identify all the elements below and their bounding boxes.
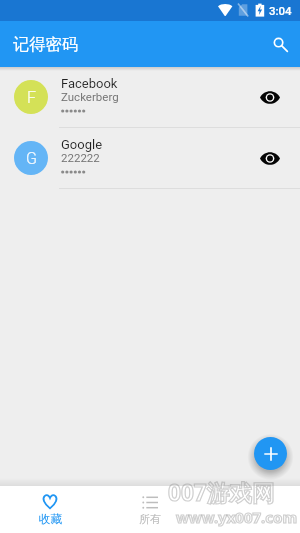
staticText: Zuckerberg (61, 90, 119, 103)
staticText: 222222 (61, 151, 100, 164)
button[interactable]: Show password (251, 139, 289, 177)
staticText: 3:04 (269, 4, 292, 17)
staticText: Facebook (61, 76, 118, 91)
button[interactable]: F (0, 67, 300, 127)
staticText: F (27, 88, 36, 107)
staticText: 所有 (139, 512, 161, 526)
button[interactable]: 所有 (100, 494, 200, 526)
button[interactable]: G (0, 128, 300, 188)
staticText: Google (61, 137, 103, 152)
button[interactable]: Show password (251, 78, 289, 116)
staticText: 记得密码 (13, 34, 79, 55)
button[interactable]: Add password (254, 437, 287, 470)
staticText: 收藏 (39, 512, 62, 526)
staticText: G (26, 149, 37, 168)
button[interactable]: 收藏 (0, 494, 100, 526)
button[interactable]: Search (266, 30, 294, 58)
